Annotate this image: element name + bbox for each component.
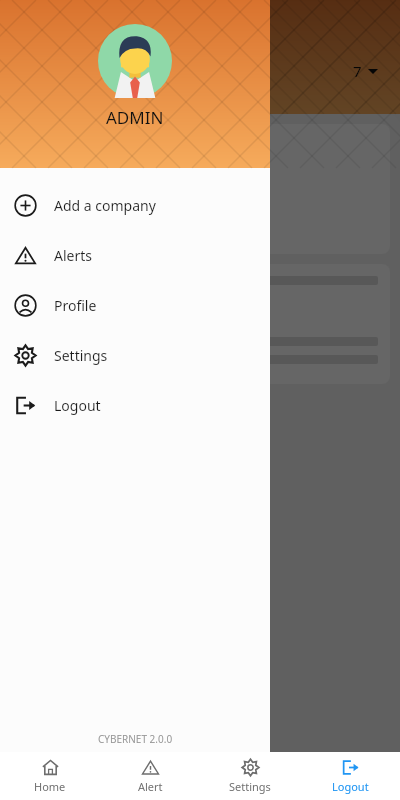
button[interactable]: Logout (300, 752, 400, 800)
staticText: Settings (54, 346, 108, 365)
staticText: Profile (54, 296, 97, 315)
staticText: 1 pending (22, 136, 79, 152)
staticText: Logout (332, 779, 369, 794)
button[interactable]: Add a company (0, 180, 270, 230)
button[interactable]: Home (0, 752, 100, 800)
button[interactable]: Profile (0, 280, 270, 330)
button[interactable]: 1 pending (10, 124, 390, 254)
button[interactable]: Alert (100, 752, 200, 800)
button[interactable]: Settings (200, 752, 300, 800)
staticText: Payment Voucher - Special Ledger (22, 202, 378, 232)
staticText: Logout (54, 396, 101, 415)
staticText: ADMIN (106, 106, 164, 129)
staticText: Settings (229, 779, 271, 794)
staticText: Home (34, 779, 66, 794)
button[interactable] (10, 264, 390, 384)
button[interactable]: Logout (0, 380, 270, 430)
button[interactable]: Alerts (0, 230, 270, 280)
staticText: Alerts (54, 246, 92, 265)
staticText: CYBERNET 2.0.0 (98, 732, 173, 746)
staticText: 7 (353, 61, 362, 81)
staticText: Alert (138, 779, 163, 794)
staticText: Add a company (54, 196, 156, 215)
button[interactable]: 7 (353, 61, 378, 81)
button[interactable]: Settings (0, 330, 270, 380)
